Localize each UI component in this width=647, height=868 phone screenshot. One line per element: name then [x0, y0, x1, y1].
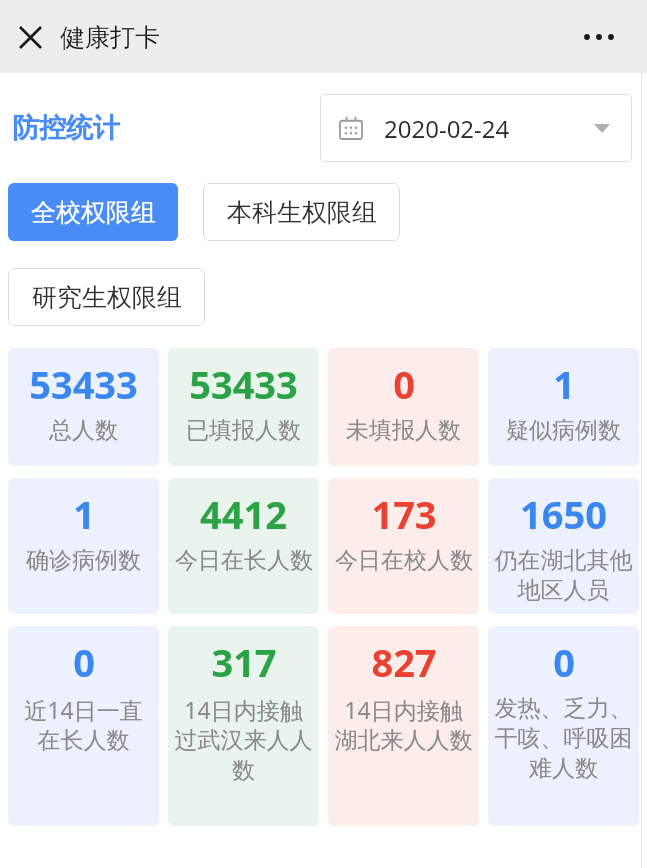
button[interactable]: 1650: [488, 478, 639, 614]
button[interactable]: 53433: [8, 348, 159, 466]
button[interactable]: 2020-02-24: [320, 94, 632, 162]
staticText: 已填报人数: [186, 416, 301, 445]
button[interactable]: 53433: [168, 348, 319, 466]
staticText: 健康打卡: [60, 22, 160, 53]
staticText: 疑似病例数: [506, 416, 621, 445]
staticText: 近14日一直在长人数: [14, 694, 153, 755]
staticText: 2020-02-24: [384, 112, 510, 145]
staticText: 本科生权限组: [227, 197, 377, 228]
staticText: 173: [371, 488, 437, 540]
staticText: 防控统计: [12, 111, 120, 145]
staticText: 总人数: [49, 416, 118, 445]
staticText: 4412: [200, 488, 287, 540]
staticText: 827: [371, 636, 437, 688]
button[interactable]: 4412: [168, 478, 319, 614]
staticText: 0: [393, 358, 415, 410]
button[interactable]: 全校权限组: [8, 183, 178, 241]
button[interactable]: 0: [488, 626, 639, 826]
button[interactable]: 827: [328, 626, 479, 826]
button[interactable]: 0: [328, 348, 479, 466]
staticText: 1: [553, 358, 575, 410]
button[interactable]: 317: [168, 626, 319, 826]
button[interactable]: 173: [328, 478, 479, 614]
staticText: 全校权限组: [31, 197, 156, 228]
staticText: 317: [211, 636, 277, 688]
staticText: 1: [73, 488, 95, 540]
button[interactable]: 研究生权限组: [8, 268, 205, 326]
staticText: 53433: [29, 358, 138, 410]
staticText: 今日在长人数: [175, 546, 313, 575]
staticText: 53433: [189, 358, 298, 410]
button[interactable]: 本科生权限组: [203, 183, 400, 241]
staticText: 仍在湖北其他地区人员: [494, 546, 633, 604]
staticText: 未填报人数: [346, 416, 461, 445]
staticText: 今日在校人数: [335, 546, 473, 575]
button[interactable]: 1: [8, 478, 159, 614]
staticText: 确诊病例数: [26, 546, 141, 575]
button[interactable]: Close: [10, 17, 50, 57]
staticText: 发热、乏力、干咳、呼吸困难人数: [494, 694, 633, 783]
button[interactable]: 1: [488, 348, 639, 466]
staticText: 1650: [520, 488, 607, 540]
staticText: 0: [553, 636, 575, 688]
button[interactable]: 0: [8, 626, 159, 826]
staticText: 14日内接触过武汉来人人数: [174, 694, 313, 785]
staticText: 0: [73, 636, 95, 688]
button[interactable]: More options: [573, 11, 625, 63]
staticText: 14日内接触湖北来人人数: [334, 694, 473, 755]
staticText: 研究生权限组: [32, 282, 182, 313]
